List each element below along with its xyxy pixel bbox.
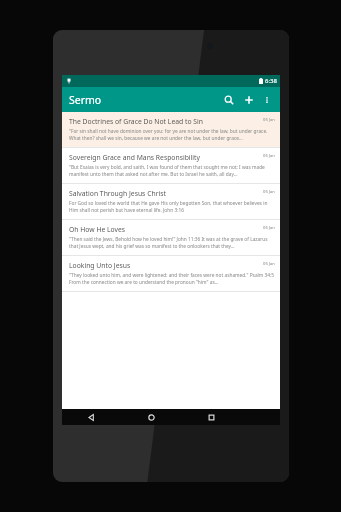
staticText: 6:38 bbox=[265, 77, 277, 85]
staticText: "For sin shall not have dominion over yo… bbox=[69, 128, 275, 142]
staticText: 05 Jan bbox=[263, 225, 275, 231]
button[interactable]: Add new sermon bbox=[239, 90, 259, 110]
button[interactable]: Search bbox=[219, 90, 239, 110]
staticText: For God so loved the world that He gave … bbox=[69, 200, 275, 214]
button[interactable]: Looking Unto Jesus bbox=[62, 256, 280, 291]
staticText: "Then said the Jews, Behold how he loved… bbox=[69, 236, 275, 250]
button[interactable]: More options bbox=[259, 92, 275, 108]
button[interactable]: Oh How He Loves bbox=[62, 220, 280, 255]
button[interactable]: Salvation Through Jesus Christ bbox=[62, 184, 280, 219]
button[interactable]: Home bbox=[121, 409, 181, 425]
staticText: 05 Jan bbox=[263, 153, 275, 159]
staticText: 05 Jan bbox=[263, 189, 275, 195]
staticText: 05 Jan bbox=[263, 117, 275, 123]
button[interactable]: Sovereign Grace and Mans Responsibility bbox=[62, 148, 280, 183]
staticText: The Doctrines of Grace Do Not Lead to Si… bbox=[69, 117, 204, 126]
button[interactable]: The Doctrines of Grace Do Not Lead to Si… bbox=[62, 112, 280, 147]
button[interactable]: Back bbox=[62, 409, 121, 425]
staticText: Looking Unto Jesus bbox=[69, 261, 131, 270]
staticText: Salvation Through Jesus Christ bbox=[69, 189, 166, 198]
staticText: 05 Jan bbox=[263, 261, 275, 267]
staticText: Sermo bbox=[69, 93, 102, 107]
staticText: Oh How He Loves bbox=[69, 225, 126, 234]
staticText: Sovereign Grace and Mans Responsibility bbox=[69, 153, 201, 162]
staticText: "But Esaias is very bold, and saith, I w… bbox=[69, 164, 275, 178]
button[interactable]: Recent apps bbox=[181, 409, 241, 425]
staticText: "They looked unto him, and were lightene… bbox=[69, 272, 275, 286]
